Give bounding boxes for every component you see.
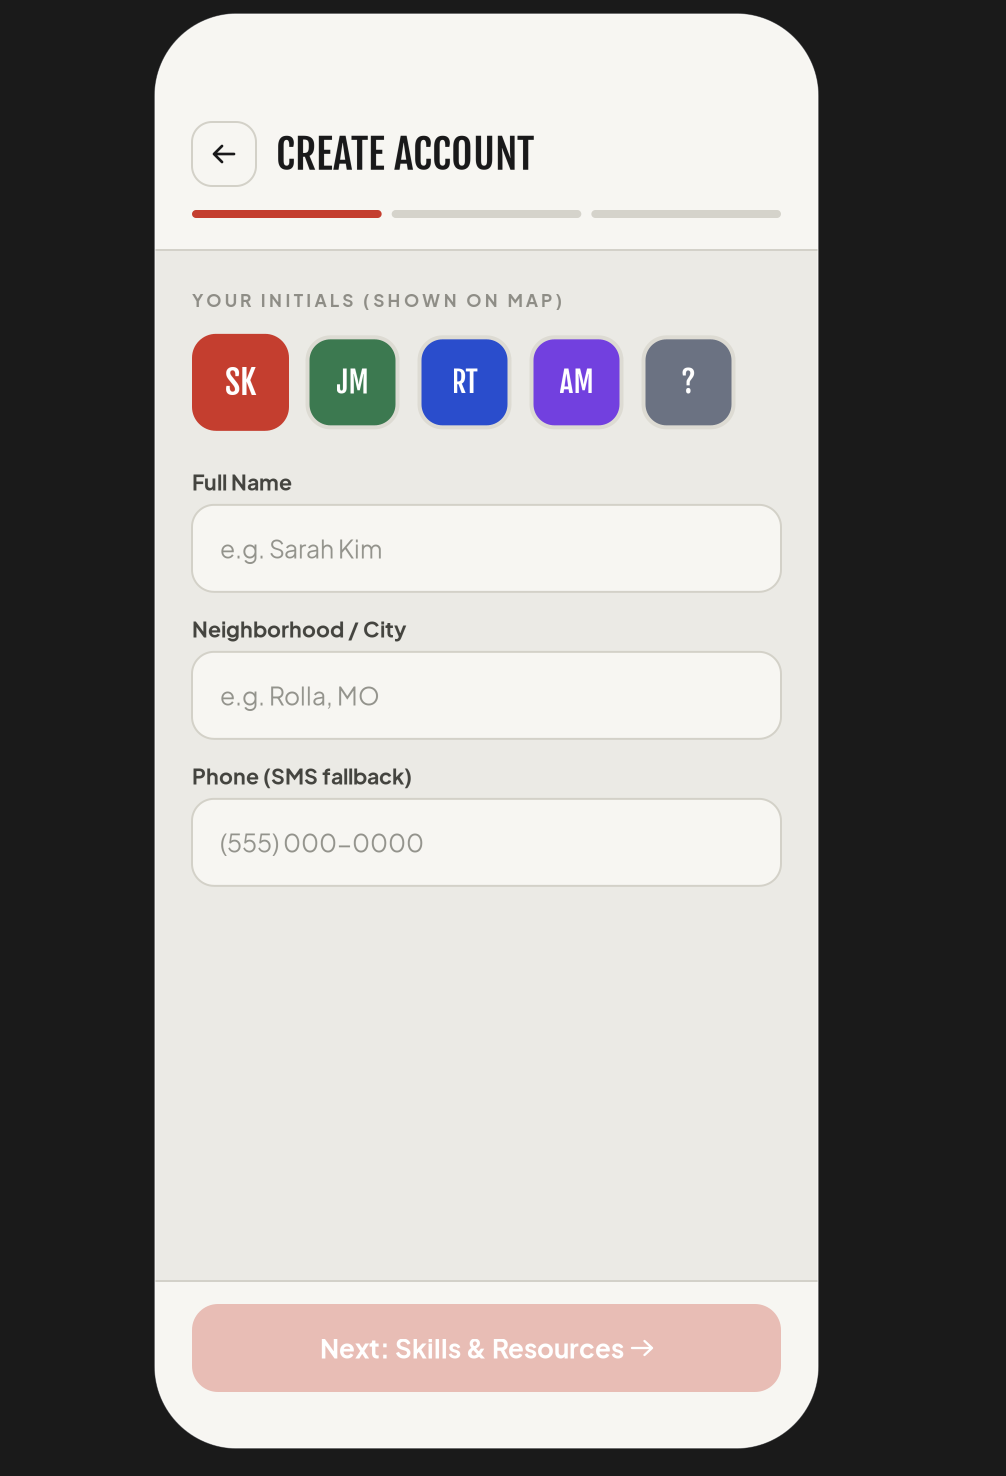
staticText: ? bbox=[681, 364, 696, 401]
staticText: YOUR INITIALS (SHOWN ON MAP) bbox=[192, 289, 562, 311]
staticText: Full Name bbox=[192, 468, 292, 495]
button[interactable]: SK bbox=[192, 334, 289, 431]
button[interactable]: (555) 000-0000 bbox=[192, 799, 781, 886]
staticText: e.g. Rolla, MO bbox=[220, 680, 380, 711]
button[interactable]: Next: Skills & Resources bbox=[192, 1304, 781, 1392]
staticText: (555) 000-0000 bbox=[220, 827, 424, 858]
button[interactable]: e.g. Rolla, MO bbox=[192, 652, 781, 739]
staticText: Next: Skills & Resources bbox=[320, 1332, 624, 1364]
staticText: SK bbox=[225, 361, 256, 403]
button[interactable]: Back bbox=[192, 122, 256, 186]
button[interactable]: JM bbox=[304, 334, 401, 431]
staticText: JM bbox=[336, 364, 368, 401]
staticText: CREATE ACCOUNT bbox=[276, 128, 534, 180]
staticText: Phone (SMS fallback) bbox=[192, 762, 412, 789]
staticText: Neighborhood / City bbox=[192, 615, 407, 642]
staticText: AM bbox=[559, 364, 593, 401]
button[interactable]: AM bbox=[528, 334, 625, 431]
staticText: RT bbox=[451, 364, 477, 401]
staticText: e.g. Sarah Kim bbox=[220, 533, 382, 564]
button[interactable]: e.g. Sarah Kim bbox=[192, 505, 781, 592]
button[interactable]: ? bbox=[640, 334, 737, 431]
button[interactable]: RT bbox=[416, 334, 513, 431]
